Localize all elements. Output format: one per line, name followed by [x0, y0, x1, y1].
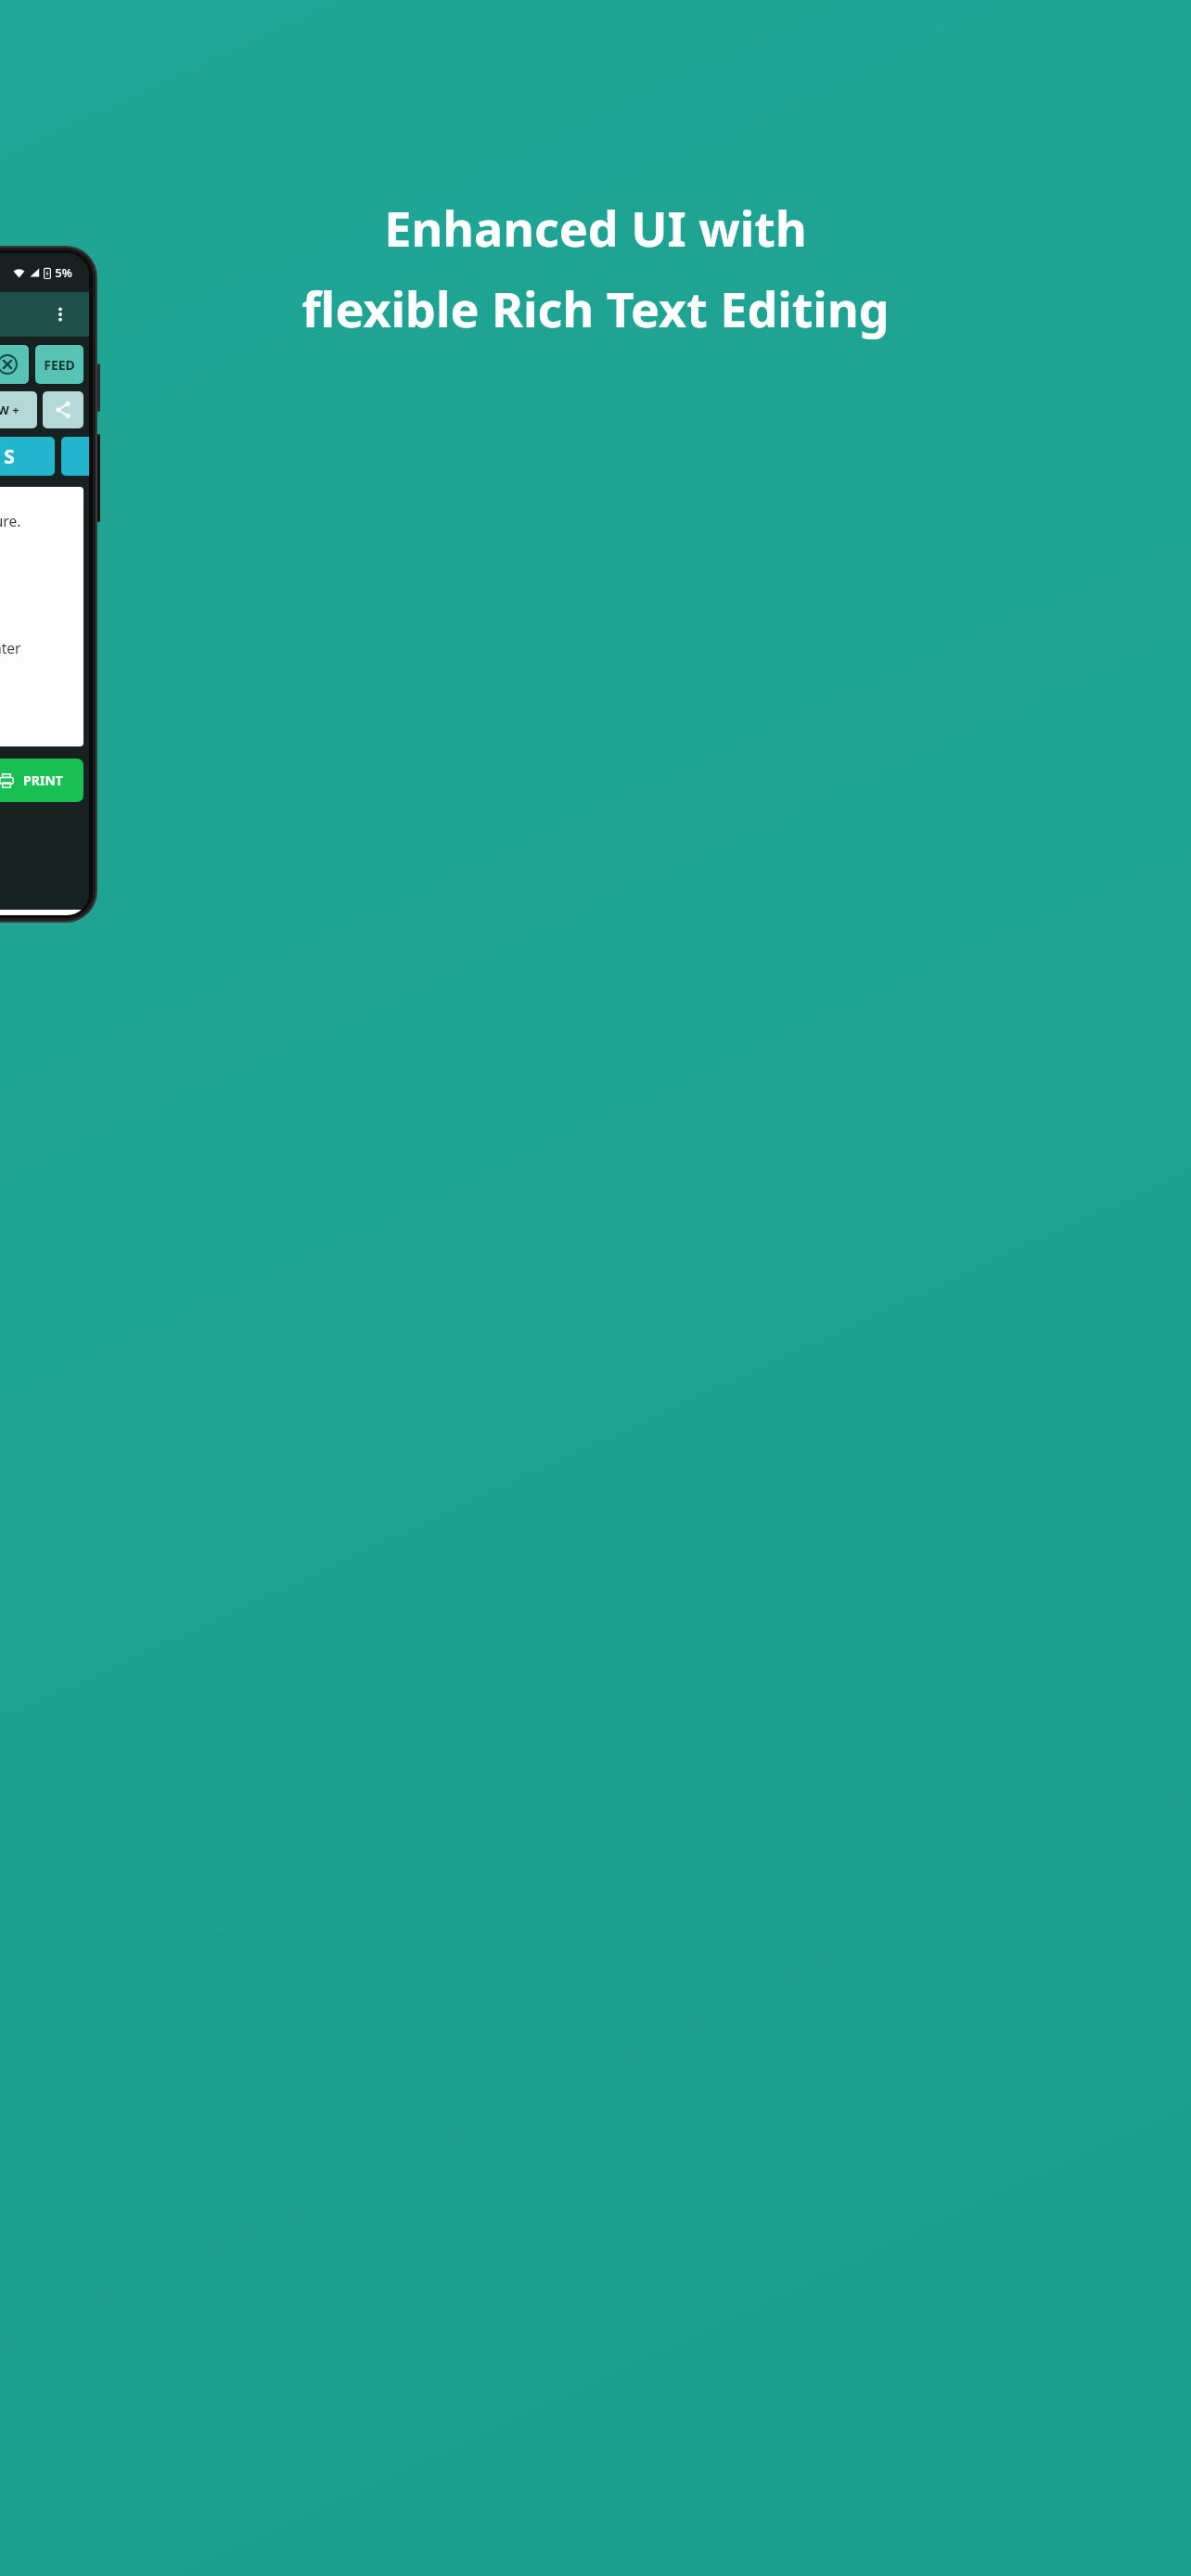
button[interactable]: More formatting: [61, 437, 89, 476]
button[interactable]: rline, small text feature.: [0, 487, 83, 746]
button[interactable]: FEED: [35, 345, 83, 384]
staticText: rline, small text feature.: [0, 511, 21, 530]
button[interactable]: 2:18:B0:53:A3]: [0, 345, 29, 384]
staticText: ously connected Printer: [0, 638, 21, 657]
staticText: flexible Rich Text Editing: [301, 275, 890, 341]
button[interactable]: Share: [43, 391, 83, 428]
staticText: Enhanced UI with: [384, 195, 807, 261]
button[interactable]: PRINT: [0, 759, 83, 802]
staticText: PRINT: [23, 772, 63, 789]
button[interactable]: S: [0, 437, 55, 476]
staticText: 5%: [55, 264, 72, 281]
button[interactable]: More options: [48, 302, 72, 326]
staticText: FEED: [44, 356, 75, 374]
staticText: S: [4, 443, 15, 470]
button[interactable]: More options: [0, 292, 89, 337]
other: Clear: [0, 354, 18, 375]
staticText: NEW +: [0, 402, 19, 418]
button[interactable]: NEW +: [0, 391, 37, 428]
